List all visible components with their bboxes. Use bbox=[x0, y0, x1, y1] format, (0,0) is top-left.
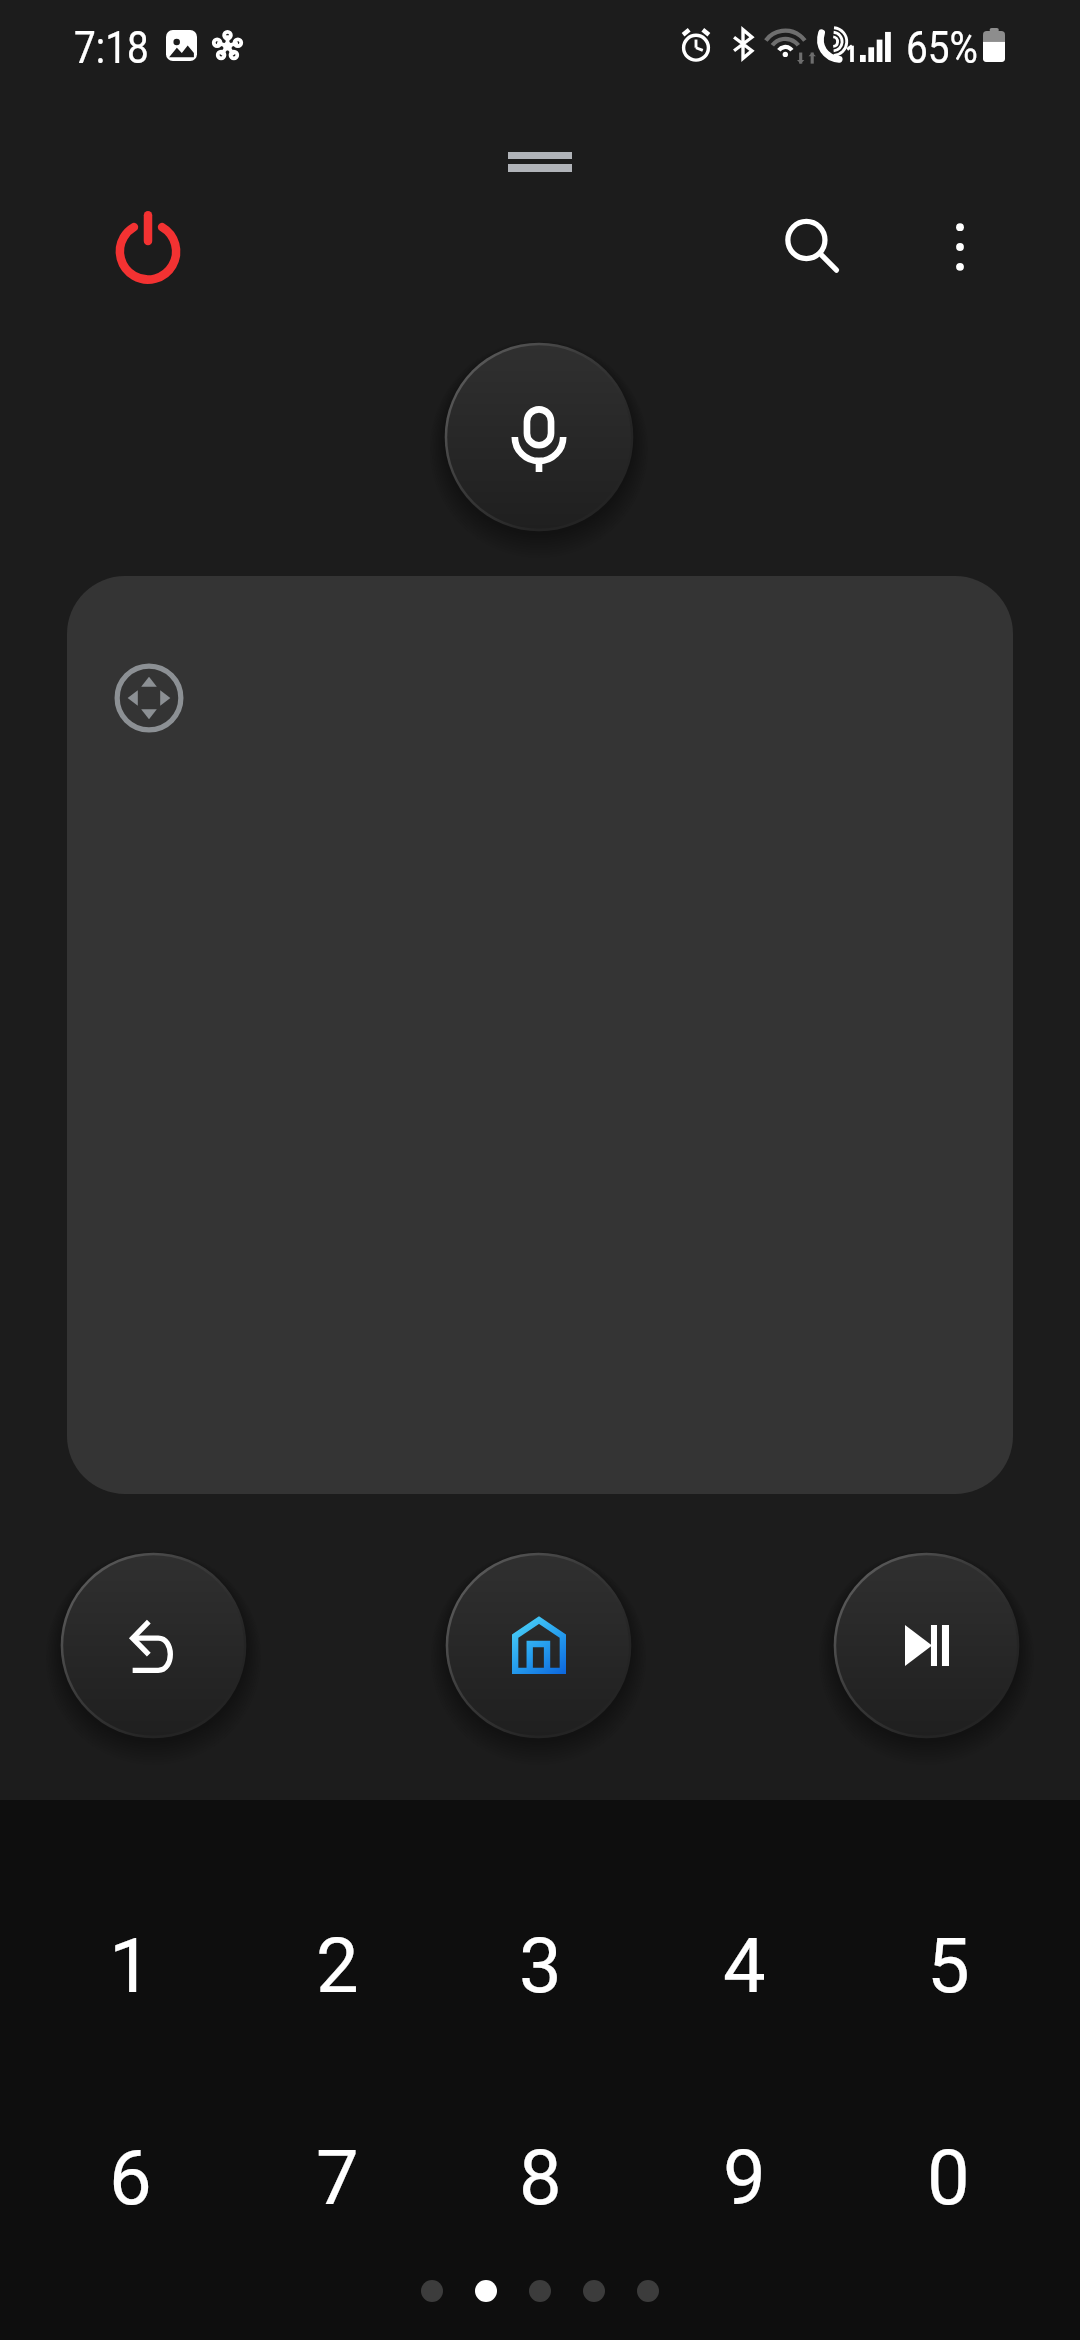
staticText: 65% bbox=[906, 22, 978, 74]
button[interactable]: Home bbox=[418, 1525, 659, 1766]
button[interactable]: Touchpad bbox=[67, 576, 1013, 1494]
button[interactable]: Power bbox=[100, 199, 196, 295]
button[interactable]: 5 bbox=[848, 1895, 1048, 2035]
staticText: 3 bbox=[519, 1921, 562, 2010]
button[interactable]: Play pause bbox=[806, 1525, 1047, 1766]
button[interactable]: 4 bbox=[644, 1895, 844, 2035]
staticText: 0 bbox=[927, 2133, 970, 2222]
staticText: 1 bbox=[109, 1921, 152, 2010]
button[interactable]: 6 bbox=[30, 2107, 230, 2247]
button[interactable]: 0 bbox=[848, 2107, 1048, 2247]
button[interactable]: Voice search bbox=[417, 315, 661, 559]
staticText: 7 bbox=[316, 2133, 359, 2222]
staticText: 7:18 bbox=[74, 22, 149, 74]
button[interactable]: 8 bbox=[440, 2107, 640, 2247]
staticText: 9 bbox=[723, 2133, 766, 2222]
button[interactable]: 2 bbox=[237, 1895, 437, 2035]
button[interactable]: 1 bbox=[30, 1895, 230, 2035]
staticText: 8 bbox=[519, 2133, 562, 2222]
button[interactable]: 9 bbox=[644, 2107, 844, 2247]
staticText: 5 bbox=[927, 1921, 970, 2010]
staticText: 4 bbox=[723, 1921, 766, 2010]
button[interactable]: 7 bbox=[237, 2107, 437, 2247]
button[interactable]: 3 bbox=[440, 1895, 640, 2035]
button[interactable]: More options bbox=[912, 199, 1008, 295]
staticText: 6 bbox=[109, 2133, 152, 2222]
button[interactable]: Search bbox=[764, 199, 860, 295]
staticText: 2 bbox=[316, 1921, 359, 2010]
button[interactable]: Back bbox=[33, 1525, 274, 1766]
